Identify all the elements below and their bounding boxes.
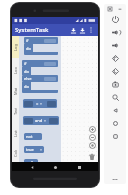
staticText: Math	[13, 88, 18, 95]
button[interactable]: More options	[87, 26, 95, 34]
button[interactable]: if	[22, 60, 58, 67]
button[interactable]: Export	[78, 26, 87, 35]
button[interactable]: Rotate right	[104, 65, 126, 78]
button[interactable]: Close	[107, 6, 113, 12]
button[interactable]: Lists	[12, 122, 19, 144]
staticText: null	[26, 160, 34, 165]
staticText: and	[35, 118, 43, 123]
staticText: do	[24, 69, 29, 74]
staticText: Logic	[13, 44, 18, 51]
button[interactable]: Take screenshot	[104, 78, 126, 91]
button[interactable]: Rotate left	[104, 52, 126, 65]
button[interactable]: if	[24, 37, 58, 44]
button[interactable]: Loops	[12, 59, 19, 81]
button[interactable]: Import	[69, 26, 78, 35]
button[interactable]: Back	[28, 163, 36, 171]
button[interactable]: Minimize	[117, 6, 123, 12]
button[interactable]: Power	[104, 13, 126, 26]
button[interactable]: Text	[12, 102, 19, 121]
button[interactable]: Back	[104, 104, 126, 117]
button[interactable]: Home	[51, 163, 59, 171]
button[interactable]: null	[24, 159, 38, 166]
staticText: Text	[13, 108, 18, 115]
button[interactable]: true	[24, 146, 44, 153]
button[interactable]: and	[23, 116, 59, 125]
staticText: SystemTask	[15, 26, 49, 34]
button[interactable]: Delete	[88, 153, 96, 161]
button[interactable]: Volume up	[104, 26, 126, 39]
button[interactable]: Zoom out	[89, 134, 96, 141]
button[interactable]: Zoom in	[89, 126, 96, 133]
button[interactable]: Home	[104, 117, 126, 130]
staticText: Colour	[13, 150, 18, 157]
button[interactable]: Volume down	[104, 39, 126, 52]
button[interactable]: =	[23, 99, 57, 108]
button[interactable]: Overview	[104, 130, 126, 143]
button[interactable]: else	[22, 75, 58, 82]
button[interactable]: Center	[89, 142, 96, 149]
button[interactable]: Math	[12, 82, 19, 101]
button[interactable]: Recents	[75, 163, 83, 171]
staticText: do	[24, 84, 29, 89]
staticText: if	[26, 38, 29, 43]
staticText: else	[24, 76, 32, 81]
staticText: not	[26, 134, 33, 139]
staticText: true	[26, 147, 34, 152]
staticText: Lists	[13, 130, 18, 137]
staticText: if	[24, 61, 27, 66]
button[interactable]: Colour	[12, 145, 19, 162]
button[interactable]: Logic	[12, 36, 19, 58]
button[interactable]: not	[24, 133, 42, 140]
button[interactable]: Zoom	[104, 91, 126, 104]
button[interactable]: More	[104, 174, 126, 184]
staticText: Loops	[13, 67, 18, 74]
staticText: do	[26, 46, 31, 51]
staticText: =	[36, 101, 39, 106]
